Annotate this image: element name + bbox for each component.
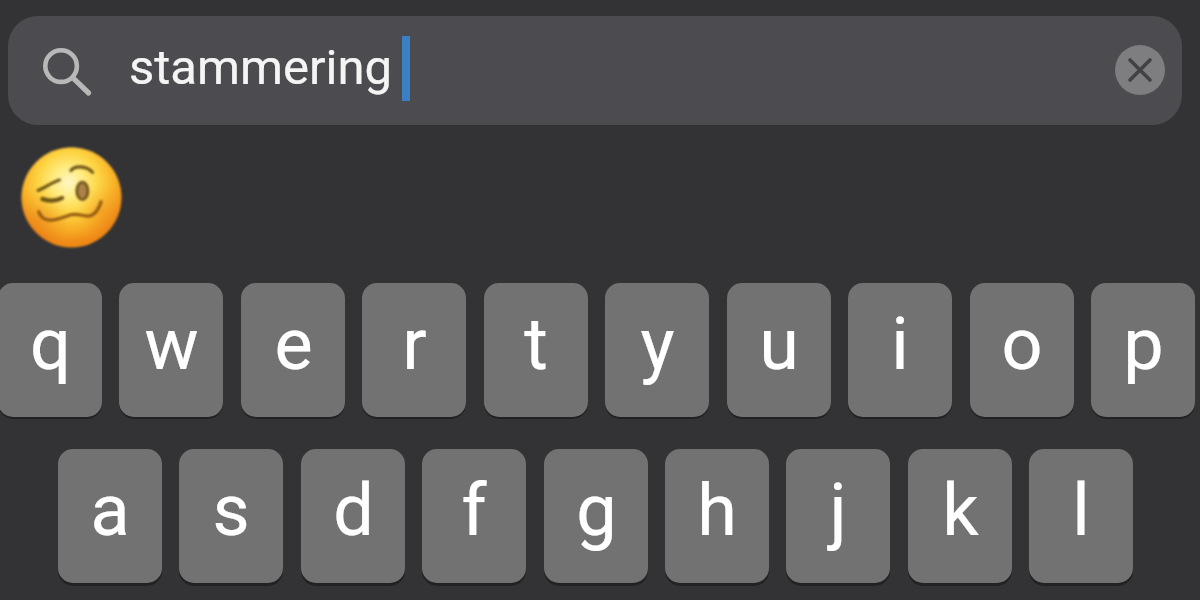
staticText: j bbox=[829, 468, 847, 552]
button[interactable]: s bbox=[179, 449, 283, 583]
staticText: u bbox=[759, 302, 799, 386]
staticText: o bbox=[1001, 302, 1043, 386]
button[interactable]: d bbox=[301, 449, 405, 583]
staticText: stammering bbox=[129, 39, 392, 96]
button[interactable]: q bbox=[0, 283, 102, 417]
staticText: d bbox=[333, 468, 374, 552]
button[interactable]: Clear search bbox=[1115, 45, 1165, 95]
button[interactable]: h bbox=[665, 449, 769, 583]
staticText: h bbox=[697, 468, 737, 552]
button[interactable]: a bbox=[58, 449, 162, 583]
staticText: w bbox=[144, 302, 199, 386]
button[interactable]: i bbox=[848, 283, 952, 417]
button[interactable]: w bbox=[119, 283, 223, 417]
staticText: r bbox=[402, 302, 427, 386]
button[interactable]: f bbox=[422, 449, 526, 583]
button[interactable]: u bbox=[727, 283, 831, 417]
button[interactable]: r bbox=[362, 283, 466, 417]
button[interactable]: e bbox=[241, 283, 345, 417]
staticText: f bbox=[461, 468, 487, 552]
staticText: y bbox=[640, 302, 675, 386]
button[interactable]: k bbox=[908, 449, 1012, 583]
button[interactable]: stammering bbox=[8, 16, 1182, 125]
staticText: e bbox=[274, 302, 313, 386]
button[interactable]: t bbox=[484, 283, 588, 417]
button[interactable]: j bbox=[786, 449, 890, 583]
staticText: k bbox=[942, 468, 979, 552]
staticText: g bbox=[576, 468, 617, 552]
staticText: p bbox=[1123, 302, 1164, 386]
button[interactable]: Woozy face emoji result bbox=[20, 146, 123, 249]
button[interactable]: l bbox=[1029, 449, 1133, 583]
staticText: l bbox=[1072, 468, 1090, 552]
button[interactable]: y bbox=[605, 283, 709, 417]
button[interactable]: o bbox=[970, 283, 1074, 417]
button[interactable]: p bbox=[1091, 283, 1195, 417]
button[interactable]: g bbox=[544, 449, 648, 583]
staticText: a bbox=[90, 468, 130, 552]
staticText: t bbox=[524, 302, 548, 386]
staticText: q bbox=[30, 302, 71, 386]
staticText: i bbox=[891, 302, 909, 386]
staticText: s bbox=[212, 468, 250, 552]
